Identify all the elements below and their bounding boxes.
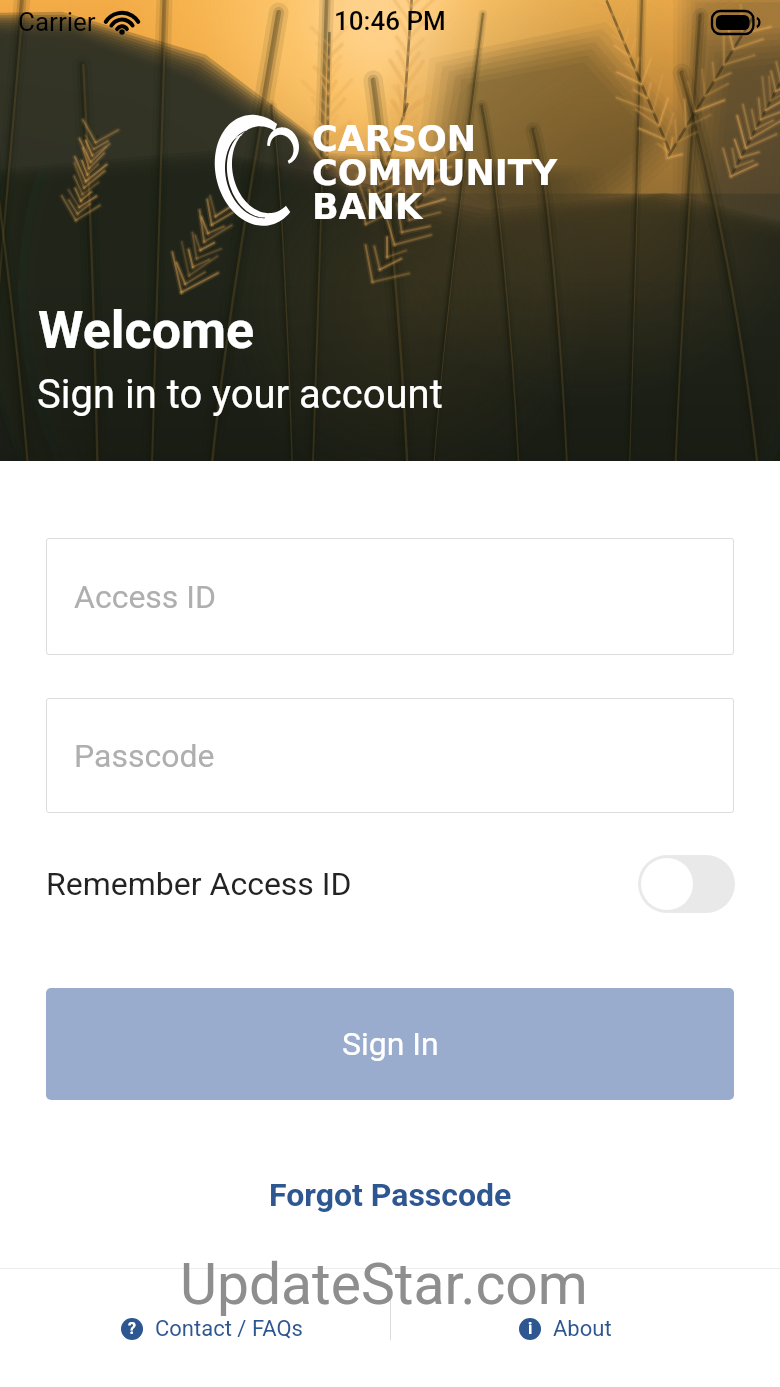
button[interactable]: Access ID — [46, 538, 734, 655]
button[interactable]: ? — [109, 1303, 315, 1355]
staticText: Sign In — [342, 1025, 439, 1063]
staticText: Sign in to your account — [37, 371, 443, 418]
staticText: i — [528, 1319, 533, 1338]
staticText: Carrier — [18, 7, 96, 37]
button[interactable]: Forgot Passcode — [253, 1168, 528, 1222]
staticText: Contact / FAQs — [155, 1316, 303, 1342]
button[interactable]: Passcode — [46, 698, 734, 813]
button[interactable]: Sign In — [46, 988, 734, 1100]
staticText: ? — [128, 1319, 136, 1338]
staticText: 10:46 PM — [334, 6, 446, 36]
staticText: About — [553, 1316, 612, 1342]
staticText: Access ID — [74, 578, 217, 616]
staticText: Remember Access ID — [46, 865, 352, 903]
button[interactable]: i — [507, 1303, 624, 1355]
staticText: Welcome — [38, 300, 255, 361]
staticText: CARSON COMMUNITY BANK — [312, 119, 558, 227]
button[interactable]: Remember Access ID — [638, 855, 735, 913]
staticText: Passcode — [74, 737, 215, 775]
staticText: Forgot Passcode — [269, 1176, 512, 1214]
staticText: UpdateStar.com — [180, 1251, 588, 1318]
